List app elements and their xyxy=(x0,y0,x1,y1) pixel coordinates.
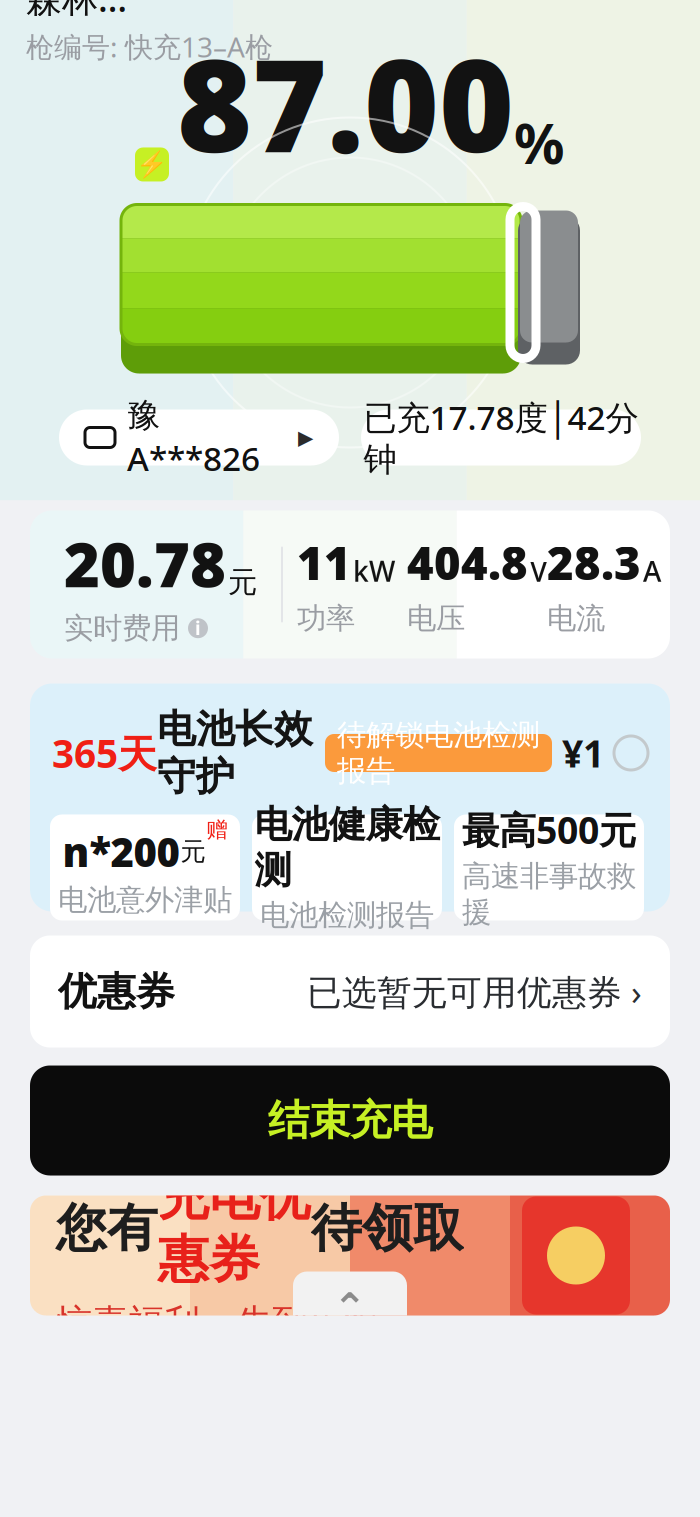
staticText: 《电池长效守护服务协议》《持续使用服务协议》 xyxy=(248,938,668,1007)
button[interactable]: Select battery protection plan xyxy=(614,736,648,770)
staticText: 404.8 xyxy=(407,532,528,593)
staticText: 电压 xyxy=(407,601,465,637)
staticText: V xyxy=(530,552,547,590)
staticText: ⌃ xyxy=(333,1285,367,1330)
staticText: 【三局云充】童话森林… xyxy=(26,0,314,22)
staticText: 已选暂无可用优惠券 › xyxy=(307,968,642,1014)
button[interactable]: 【三局云充】童话森林… xyxy=(0,0,353,69)
button[interactable]: 豫A***826 xyxy=(59,409,339,465)
staticText: 电流 xyxy=(547,601,605,637)
staticText: 电池检测报告 xyxy=(260,897,434,933)
staticText: 电池健康检测 xyxy=(254,802,439,893)
staticText: 电池意外津贴 xyxy=(58,882,232,918)
staticText: 高速非事故救援 xyxy=(462,858,636,930)
button[interactable]: 结束充电 xyxy=(30,1065,670,1175)
staticText: 待领取 xyxy=(311,1197,464,1259)
staticText: 功率 xyxy=(297,601,355,637)
staticText: 结束充电 xyxy=(268,1095,432,1146)
staticText: 勾选即视为同意 xyxy=(52,956,248,990)
staticText: ▶ xyxy=(298,426,313,449)
button[interactable]: 《电池长效守护服务协议》《持续使用服务协议》 xyxy=(248,938,668,1007)
staticText: 20.78 xyxy=(64,523,226,604)
staticText: 实时费用 xyxy=(64,610,180,646)
staticText: 11 xyxy=(297,532,351,593)
staticText: 惊喜福利，先到先得 xyxy=(56,1301,380,1345)
staticText: A xyxy=(643,552,661,590)
staticText: 电池长效守护 xyxy=(157,705,313,800)
staticText: 元 xyxy=(228,564,257,600)
staticText: 枪编号: 快充13–A枪 xyxy=(26,28,273,65)
button[interactable]: Charging coupons available to claim xyxy=(30,1195,670,1315)
staticText: 您有 xyxy=(56,1197,158,1259)
button[interactable]: 已充17.78度│42分钟 xyxy=(361,409,641,465)
staticText: 最高500元 xyxy=(462,805,636,854)
staticText: kW xyxy=(353,552,395,590)
staticText: % xyxy=(514,105,565,179)
staticText: i xyxy=(195,616,201,641)
staticText: 已充17.78度│42分钟 xyxy=(363,395,638,480)
staticText: ⚡ xyxy=(136,150,168,179)
staticText: 待解锁电池检测报告 xyxy=(337,717,540,789)
staticText: 87.00 xyxy=(177,17,514,187)
staticText: 优惠券 xyxy=(58,968,175,1015)
staticText: 赠 xyxy=(206,817,227,843)
staticText: 充电优惠券 xyxy=(158,1166,311,1291)
staticText: 28.3 xyxy=(547,532,641,593)
staticText: 365天 xyxy=(52,727,157,779)
staticText: ¥1 xyxy=(562,728,604,778)
staticText: 豫A***826 xyxy=(127,395,260,480)
staticText: n*200 xyxy=(62,825,179,878)
staticText: 元 xyxy=(180,836,205,867)
button[interactable]: 优惠券 xyxy=(30,935,670,1047)
